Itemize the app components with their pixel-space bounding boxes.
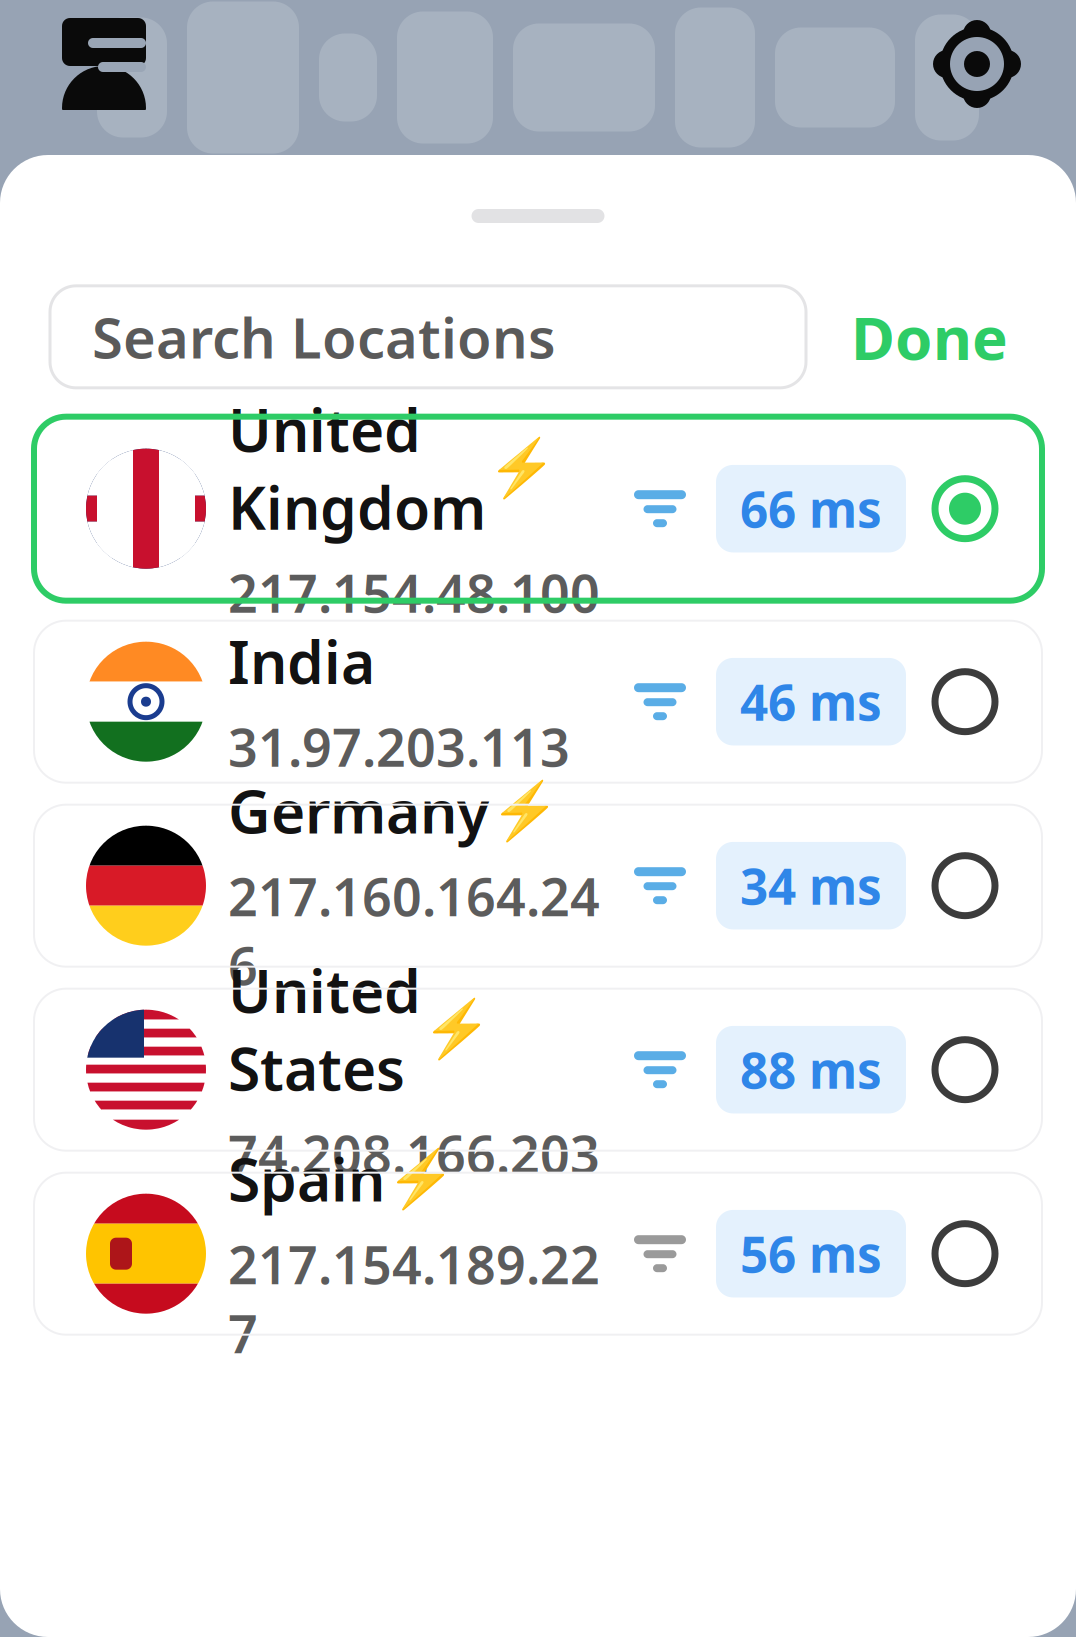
button[interactable]: United Kingdom xyxy=(0,417,1076,601)
staticText: ⚡ xyxy=(386,1147,456,1211)
staticText: 217.154.48.100 xyxy=(228,558,600,627)
button[interactable]: Germany xyxy=(0,805,1076,967)
staticText: 31.97.203.113 xyxy=(228,712,570,781)
staticText: United States xyxy=(228,951,421,1107)
button[interactable]: Spain xyxy=(0,1173,1076,1335)
staticText: Search Locations xyxy=(92,300,556,374)
staticText: 217.154.189.227 xyxy=(228,1230,600,1368)
staticText: ⚡ xyxy=(487,436,557,500)
button[interactable]: Done xyxy=(837,285,1022,389)
staticText: Germany xyxy=(228,772,489,850)
staticText: 66 ms xyxy=(740,476,882,541)
button[interactable]: India xyxy=(0,621,1076,783)
staticText: India xyxy=(228,622,375,700)
staticText: 34 ms xyxy=(740,853,882,918)
staticText: Spain xyxy=(228,1140,385,1218)
staticText: 46 ms xyxy=(740,669,882,734)
staticText: ⚡ xyxy=(490,779,560,843)
staticText: United Kingdom xyxy=(228,390,486,546)
staticText: ⚡ xyxy=(422,997,492,1061)
staticText: 217.160.164.246 xyxy=(228,862,600,1000)
staticText: Done xyxy=(851,297,1008,377)
button[interactable]: United States xyxy=(0,989,1076,1151)
button[interactable]: Search Locations xyxy=(50,286,806,388)
staticText: 74.208.166.203 xyxy=(228,1119,600,1188)
staticText: 56 ms xyxy=(740,1221,882,1286)
staticText: 88 ms xyxy=(740,1037,882,1102)
button[interactable]: Settings xyxy=(932,19,1022,109)
